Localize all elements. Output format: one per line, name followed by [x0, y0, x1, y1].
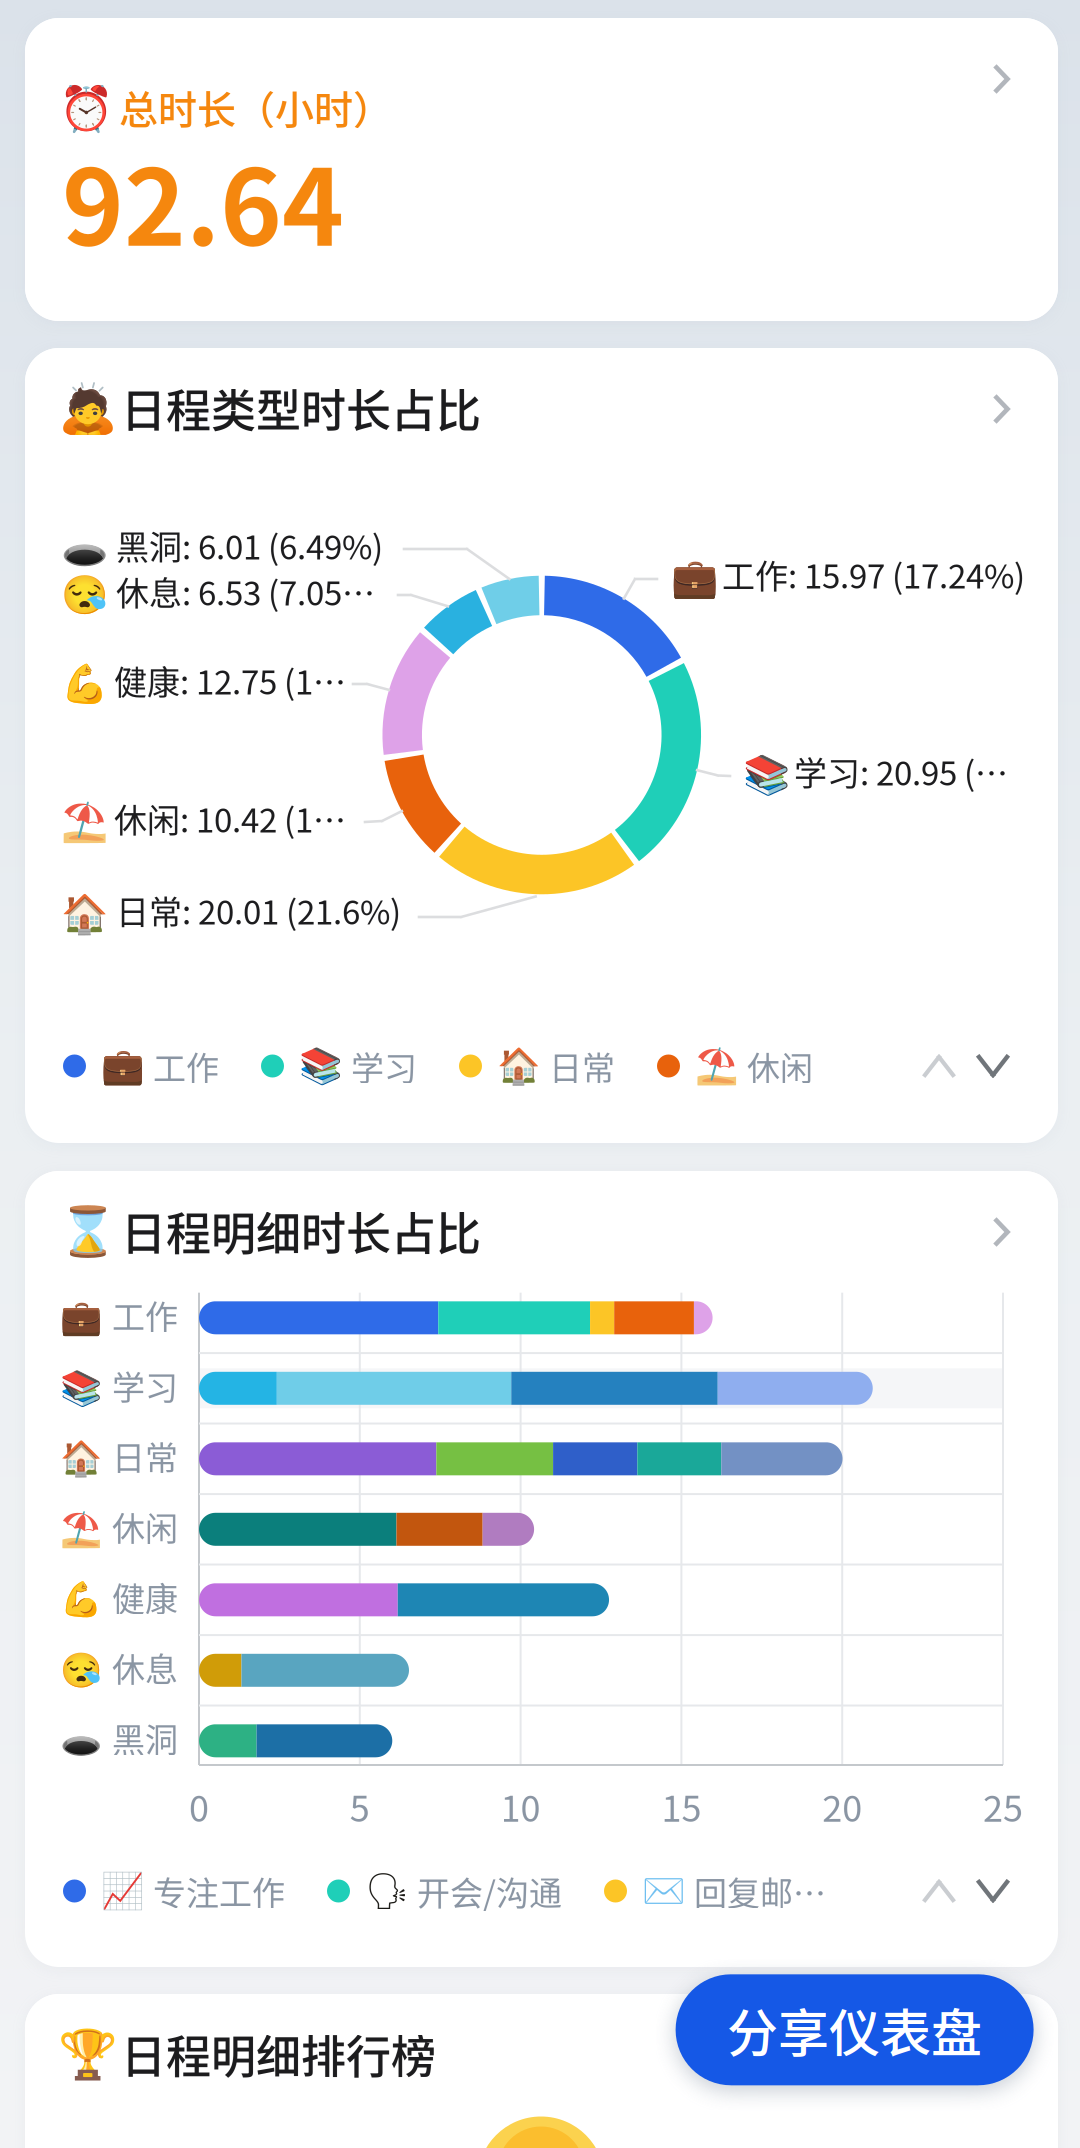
staticText: 日程类型时长占比 [121, 375, 481, 441]
button[interactable]: 展开 [969, 1872, 1017, 1910]
button[interactable]: ⏰ [25, 18, 1058, 321]
staticText: 日程明细时长占比 [121, 1198, 481, 1264]
staticText: 专注工作 [153, 1867, 285, 1915]
staticText: 🗣 [365, 1870, 409, 1911]
staticText: 回复邮… [694, 1867, 826, 1915]
button[interactable]: 🏠 [459, 1042, 615, 1090]
staticText: ⛱️ [60, 1509, 102, 1549]
staticText: 0 [189, 1780, 209, 1832]
staticText: 10 [501, 1780, 541, 1832]
staticText: 😪 [61, 573, 108, 617]
staticText: 休息 [112, 1643, 178, 1691]
staticText: 黑洞: 6.01 (6.49%) [116, 521, 383, 569]
staticText: 💪 [61, 662, 108, 706]
staticText: 休息: 6.53 (7.05… [116, 567, 375, 615]
staticText: 健康 [112, 1573, 178, 1621]
staticText: 健康: 12.75 (1… [114, 656, 346, 704]
button[interactable]: 展开 [969, 1047, 1017, 1085]
button[interactable]: ⌛ [25, 1171, 1058, 1293]
staticText: 学习: 20.95 (… [794, 747, 1008, 795]
staticText: 25 [983, 1780, 1023, 1832]
staticText: 工作 [153, 1042, 219, 1090]
staticText: 休闲 [112, 1502, 178, 1550]
staticText: 🏠 [61, 892, 108, 936]
staticText: 学习 [112, 1361, 178, 1409]
staticText: 🏠 [60, 1439, 102, 1479]
staticText: 黑洞 [112, 1714, 178, 1762]
staticText: 学习 [351, 1042, 417, 1090]
staticText: 92.64 [62, 124, 344, 276]
button[interactable]: 💼 [63, 1042, 219, 1090]
staticText: 🙇 [58, 381, 118, 437]
staticText: 🕳️ [60, 1721, 102, 1761]
staticText: ⛱️ [695, 1045, 739, 1086]
button[interactable]: ⛱️ [657, 1042, 813, 1090]
staticText: ✉️ [642, 1870, 686, 1911]
staticText: 💪 [60, 1580, 102, 1620]
staticText: 15 [661, 1780, 701, 1832]
staticText: 日常: 20.01 (21.6%) [116, 886, 401, 934]
staticText: 日程明细排行榜 [121, 2021, 436, 2087]
button[interactable]: 收起 [915, 1872, 969, 1910]
staticText: 📈 [101, 1870, 145, 1911]
staticText: 工作 [112, 1291, 178, 1339]
staticText: 休闲 [747, 1042, 813, 1090]
staticText: 💼 [671, 556, 718, 600]
staticText: 📚 [299, 1045, 343, 1086]
button[interactable]: 📚 [261, 1042, 417, 1090]
button[interactable]: 📈 [63, 1867, 285, 1915]
staticText: 🏆 [58, 2027, 118, 2083]
staticText: 📚 [60, 1368, 102, 1408]
staticText: 🕳️ [61, 527, 108, 571]
staticText: 休闲: 10.42 (1… [114, 794, 346, 842]
button[interactable]: 🗣 [327, 1867, 562, 1915]
button[interactable]: 分享仪表盘 [676, 1974, 1034, 2085]
staticText: 开会/沟通 [417, 1867, 562, 1915]
staticText: 日常 [549, 1042, 615, 1090]
button[interactable]: ✉️ [604, 1867, 826, 1915]
staticText: 工作: 15.97 (17.24%) [722, 550, 1025, 598]
button[interactable]: 收起 [915, 1047, 969, 1085]
staticText: 🏠 [497, 1045, 541, 1086]
staticText: 📚 [743, 753, 790, 797]
staticText: 总时长（小时） [119, 79, 392, 135]
staticText: ⌛ [58, 1204, 118, 1260]
staticText: 😪 [60, 1650, 102, 1690]
staticText: 分享仪表盘 [727, 1993, 982, 2067]
staticText: 日常 [112, 1432, 178, 1480]
button[interactable]: 🏆 [25, 1994, 1058, 2116]
button[interactable]: 🙇 [25, 348, 1058, 470]
staticText: 💼 [101, 1045, 145, 1086]
staticText: 20 [822, 1780, 862, 1832]
staticText: ⏰ [59, 83, 114, 135]
staticText: 💼 [60, 1298, 102, 1338]
staticText: ⛱️ [61, 800, 108, 844]
staticText: 5 [350, 1780, 370, 1832]
